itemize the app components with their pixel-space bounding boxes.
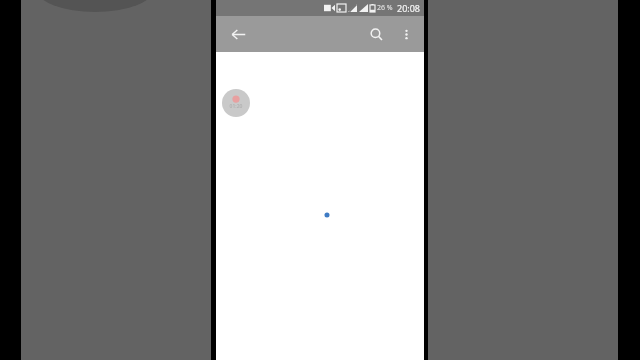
button[interactable]: More options	[392, 20, 420, 48]
staticText: 20:08	[397, 2, 421, 14]
button[interactable]: Video message	[222, 89, 250, 117]
staticText: 01:20	[222, 103, 250, 110]
button[interactable]: Back	[224, 20, 252, 48]
button[interactable]: Search	[362, 20, 390, 48]
staticText: 26 %	[377, 3, 393, 13]
